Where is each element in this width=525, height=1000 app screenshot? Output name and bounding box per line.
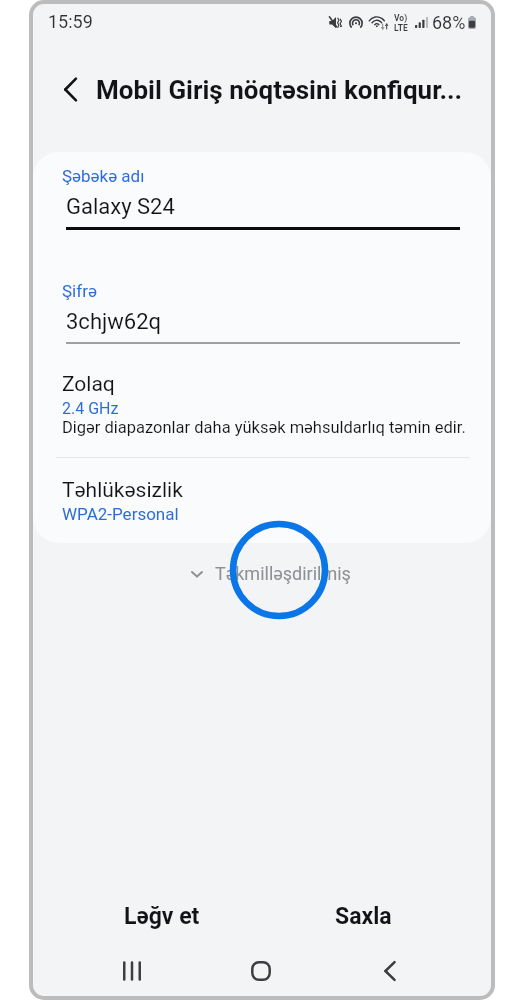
- staticText: Şifrə: [62, 281, 97, 301]
- staticText: Təhlükəsizlik: [62, 478, 183, 503]
- staticText: Digər diapazonlar daha yüksək məhsuldarl…: [62, 418, 466, 437]
- staticText: WPA2-Personal: [62, 504, 179, 524]
- staticText: 68%: [432, 12, 466, 33]
- button[interactable]: Zolaq: [33, 370, 491, 443]
- button[interactable]: Back: [366, 947, 414, 995]
- staticText: 15:59: [48, 11, 93, 32]
- staticText: Galaxy S24: [66, 194, 175, 220]
- staticText: Şəbəkə adı: [62, 166, 145, 186]
- staticText: 2.4 GHz: [62, 399, 119, 418]
- button[interactable]: Back: [53, 72, 87, 106]
- button[interactable]: Təkmilləşdirilmiş: [185, 557, 357, 590]
- button[interactable]: Saxla: [263, 890, 463, 942]
- staticText: Mobil Giriş nöqtəsini konfiqur...: [96, 75, 463, 105]
- button[interactable]: Recent apps: [108, 947, 156, 995]
- staticText: LTE: [394, 23, 408, 33]
- staticText: Ləğv et: [124, 903, 200, 930]
- staticText: Saxla: [335, 903, 392, 930]
- button[interactable]: Ləğv et: [62, 890, 262, 942]
- staticText: 3chjw62q: [66, 309, 162, 335]
- button[interactable]: Home: [237, 947, 285, 995]
- staticText: Zolaq: [62, 372, 115, 397]
- staticText: Vo): [394, 13, 408, 23]
- button[interactable]: Təhlükəsizlik: [33, 476, 491, 530]
- staticText: Təkmilləşdirilmiş: [215, 563, 351, 584]
